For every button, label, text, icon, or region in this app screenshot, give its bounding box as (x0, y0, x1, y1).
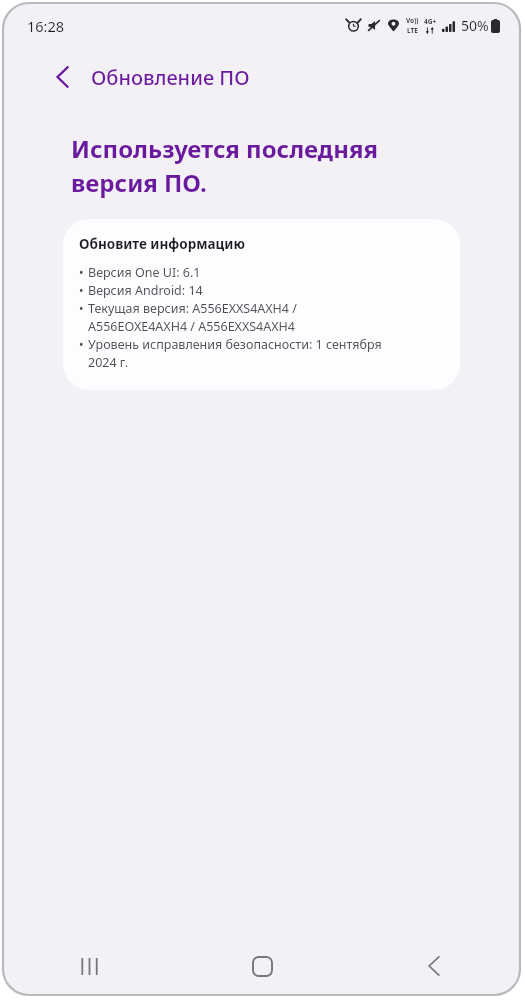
staticText: • (79, 264, 88, 280)
staticText: LTE (407, 26, 418, 35)
staticText: Уровень исправления безопасности: 1 сент… (88, 336, 382, 371)
staticText: 50% (461, 16, 489, 35)
staticText: • (79, 282, 88, 298)
staticText: Текущая версия: A556EXXS4AXH4 / A556EOXE… (88, 300, 297, 335)
button[interactable]: Home (176, 937, 348, 995)
staticText: Обновите информацию (79, 235, 245, 253)
staticText: Vo)) (406, 16, 419, 25)
staticText: 16:28 (27, 16, 65, 36)
button[interactable]: Recent apps (3, 937, 176, 995)
staticText: Версия One UI: 6.1 (88, 264, 201, 281)
staticText: Используется последняя версия ПО. (71, 132, 378, 199)
staticText: • (79, 336, 88, 352)
staticText: Версия Android: 14 (88, 282, 203, 299)
button[interactable]: Back (47, 62, 77, 92)
button[interactable]: Back (348, 937, 520, 995)
button[interactable]: Обновите информацию (63, 219, 460, 390)
staticText: Обновление ПО (91, 64, 250, 91)
staticText: • (79, 300, 88, 316)
staticText: 4G+ (424, 17, 437, 26)
